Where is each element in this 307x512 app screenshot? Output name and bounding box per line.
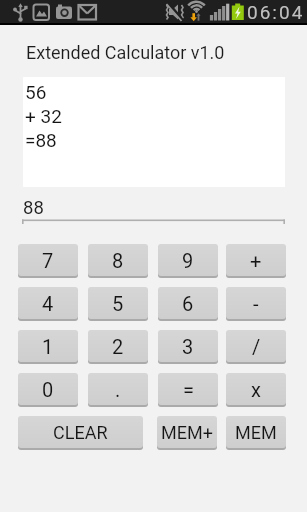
staticText: / xyxy=(252,335,261,358)
staticText: + xyxy=(250,249,262,272)
staticText: = xyxy=(183,378,194,401)
staticText: 56 + 32 =88 xyxy=(25,81,62,152)
button[interactable]: 1 xyxy=(18,330,78,362)
staticText: Extended Calculator v1.0 xyxy=(26,42,225,63)
button[interactable]: 8 xyxy=(88,244,148,276)
staticText: 88 xyxy=(23,197,44,219)
staticText: CLEAR xyxy=(53,422,108,443)
staticText: 8 xyxy=(112,249,124,272)
button[interactable]: MEM xyxy=(226,416,286,448)
button[interactable]: 7 xyxy=(18,244,78,276)
button[interactable]: 5 xyxy=(88,287,148,319)
button[interactable]: = xyxy=(158,373,218,405)
staticText: x xyxy=(251,378,261,401)
button[interactable]: + xyxy=(226,244,286,276)
button[interactable]: x xyxy=(226,373,286,405)
button[interactable]: 4 xyxy=(18,287,78,319)
staticText: - xyxy=(253,292,259,315)
staticText: MEM+ xyxy=(161,422,213,443)
staticText: 1 xyxy=(42,335,54,358)
button[interactable]: CLEAR xyxy=(18,416,143,448)
button[interactable]: 9 xyxy=(158,244,218,276)
button[interactable]: 6 xyxy=(158,287,218,319)
staticText: 3 xyxy=(182,335,194,358)
button[interactable]: / xyxy=(226,330,286,362)
staticText: 06:04 xyxy=(247,1,305,23)
staticText: 5 xyxy=(112,292,124,315)
button[interactable]: 88 xyxy=(22,190,285,223)
button[interactable]: 2 xyxy=(88,330,148,362)
button[interactable]: - xyxy=(226,287,286,319)
staticText: 9 xyxy=(182,249,194,272)
button[interactable]: MEM+ xyxy=(157,416,217,448)
button[interactable]: 0 xyxy=(18,373,78,405)
button[interactable]: 3 xyxy=(158,330,218,362)
staticText: 6 xyxy=(182,292,194,315)
staticText: 0 xyxy=(42,378,54,401)
staticText: 2 xyxy=(112,335,124,358)
staticText: . xyxy=(115,378,121,401)
staticText: 7 xyxy=(42,249,54,272)
staticText: 4 xyxy=(42,292,54,315)
button[interactable]: . xyxy=(88,373,148,405)
staticText: MEM xyxy=(235,422,277,443)
